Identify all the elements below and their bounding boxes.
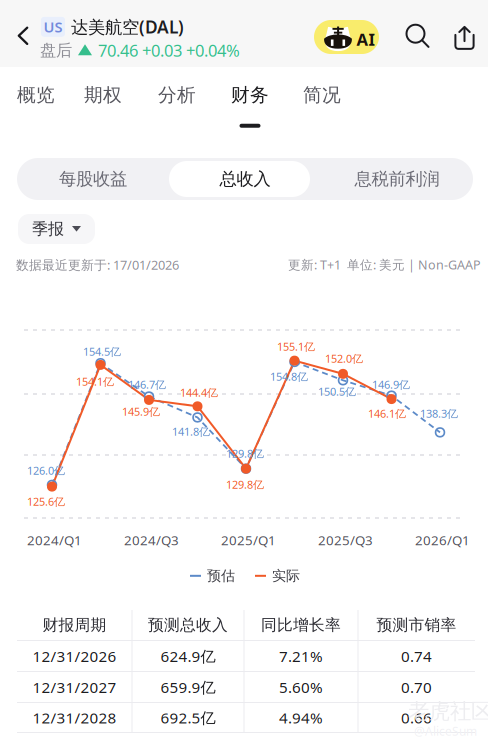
staticText: 155.1亿: [277, 339, 315, 354]
staticText: 146.9亿: [372, 377, 410, 392]
staticText: 2024/Q3: [124, 531, 179, 549]
staticText: 12/31/2026: [32, 646, 116, 666]
button[interactable]: 简况: [303, 84, 341, 127]
staticText: AI: [356, 28, 374, 51]
staticText: 2026/Q1: [415, 531, 470, 549]
staticText: 预测市销率: [376, 615, 456, 635]
staticText: US: [43, 17, 62, 37]
staticText: 盘后: [40, 40, 72, 60]
staticText: 0.70: [401, 677, 432, 697]
staticText: 4.94%: [279, 707, 323, 728]
staticText: 154.1亿: [76, 374, 114, 389]
staticText: 129.8亿: [226, 477, 264, 492]
staticText: 0.66: [401, 707, 432, 728]
button[interactable]: 息税前利润: [321, 158, 473, 200]
staticText: 同比增长率: [261, 615, 341, 635]
staticText: 期权: [84, 83, 122, 107]
staticText: 财务: [231, 83, 269, 107]
button[interactable]: AI assistant: [314, 20, 379, 54]
staticText: 659.9亿: [160, 677, 215, 697]
staticText: 125.6亿: [27, 494, 65, 509]
staticText: 145.9亿: [122, 404, 160, 419]
staticText: 分析: [158, 83, 196, 107]
button[interactable]: 季报: [18, 214, 95, 244]
staticText: 150.5亿: [318, 384, 356, 399]
staticText: 季报: [32, 219, 64, 239]
button[interactable]: 概览: [17, 84, 55, 127]
button[interactable]: 财务: [231, 84, 269, 127]
staticText: 达美航空(DAL): [71, 15, 184, 39]
button[interactable]: 总收入: [169, 158, 321, 200]
staticText: 146.1亿: [368, 406, 406, 421]
staticText: 老虎社区: [408, 698, 488, 725]
staticText: 预估: [207, 567, 235, 585]
staticText: 5.60%: [279, 677, 323, 697]
staticText: 实际: [272, 567, 300, 585]
staticText: 0.74: [401, 646, 432, 666]
staticText: 138.3亿: [420, 406, 458, 421]
staticText: 预测总收入: [148, 615, 228, 635]
staticText: 70.46 +0.03 +0.04%: [98, 39, 240, 61]
staticText: 简况: [303, 83, 341, 107]
staticText: 2024/Q1: [27, 531, 82, 549]
staticText: 2025/Q1: [221, 531, 276, 549]
staticText: 7.21%: [279, 646, 323, 666]
button[interactable]: Search: [405, 23, 430, 49]
button[interactable]: Share: [454, 25, 475, 50]
staticText: 12/31/2027: [32, 677, 116, 697]
staticText: 息税前利润: [354, 168, 439, 190]
staticText: 141.8亿: [172, 424, 210, 439]
button[interactable]: 期权: [84, 84, 122, 127]
staticText: 2025/Q3: [318, 531, 373, 549]
staticText: 126.0亿: [27, 463, 65, 478]
staticText: 财报周期: [42, 615, 106, 635]
button[interactable]: 分析: [158, 84, 196, 127]
staticText: 144.4亿: [180, 385, 218, 400]
staticText: 数据最近更新于: 17/01/2026: [16, 256, 179, 273]
button[interactable]: Back: [10, 24, 36, 48]
staticText: 概览: [17, 83, 55, 107]
staticText: 每股收益: [59, 168, 127, 190]
staticText: 154.5亿: [83, 344, 121, 359]
staticText: 152.0亿: [325, 351, 363, 366]
staticText: 692.5亿: [160, 707, 215, 728]
staticText: 12/31/2028: [32, 707, 116, 728]
staticText: 总收入: [219, 168, 270, 190]
staticText: 129.8亿: [226, 446, 264, 461]
button[interactable]: 每股收益: [17, 158, 169, 200]
staticText: 154.8亿: [270, 369, 308, 384]
staticText: 146.7亿: [128, 377, 166, 392]
staticText: 624.9亿: [160, 646, 215, 666]
staticText: 更新: T+1 单位: 美元 | Non-GAAP: [288, 256, 481, 273]
staticText: @AliceSum: [414, 723, 477, 739]
